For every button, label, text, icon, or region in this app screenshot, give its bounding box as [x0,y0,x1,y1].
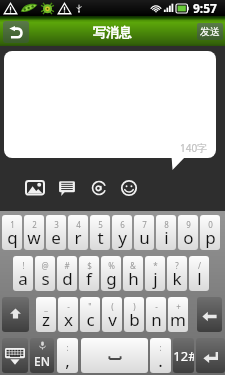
staticText: 4 [76,219,81,230]
staticText: @ [41,260,49,271]
staticText: r [74,226,82,249]
staticText: EN [34,353,50,369]
staticText: : [66,342,69,353]
button[interactable]: _ [36,297,56,332]
button[interactable]: 0 [200,215,220,250]
staticText: q [7,226,18,249]
button[interactable]: $ [79,256,99,291]
staticText: 1 [10,219,15,230]
button[interactable]: : [150,338,171,373]
button[interactable]: 3 [46,215,66,250]
button[interactable]: @ [35,256,55,291]
staticText: * [153,260,158,271]
button[interactable]: 9 [178,215,198,250]
button[interactable]: 7 [134,215,154,250]
button[interactable]: 4 [68,215,88,250]
staticText: _ [44,301,48,312]
button[interactable]: - [58,297,78,332]
staticText: b [129,308,140,331]
staticText: a [18,267,28,290]
staticText: 8 [164,219,169,230]
button[interactable]: Emoji [120,179,138,197]
staticText: 0 [208,219,213,230]
staticText: 6 [120,219,125,230]
staticText: e [51,226,61,249]
button[interactable]: 发送 [197,23,223,40]
staticText: 3 [54,219,59,230]
button[interactable]: 8 [156,215,176,250]
button[interactable]: - [146,297,166,332]
staticText: m [170,308,186,331]
button[interactable]: ) [124,297,144,332]
staticText: ! [22,260,25,271]
staticText: 140字 [180,141,208,155]
button[interactable] [81,338,148,373]
button[interactable]: / [189,256,209,291]
staticText: " [88,301,92,312]
staticText: ( [111,301,114,312]
staticText: o [183,226,194,249]
button[interactable]: # [57,256,77,291]
staticText: z [42,308,50,331]
staticText: j [153,267,158,290]
button[interactable]: 6 [112,215,132,250]
staticText: . [158,349,163,372]
staticText: v [108,308,117,331]
staticText: t [97,226,104,249]
staticText: / [198,260,201,271]
staticText: 5 [98,219,103,230]
button[interactable] [2,297,29,332]
staticText: ) [133,301,136,312]
button[interactable]: Mention someone [90,179,108,197]
button[interactable]: + [168,297,188,332]
staticText: n [151,308,162,331]
staticText: % [108,260,115,271]
staticText: 2 [32,219,37,230]
staticText: - [67,301,70,312]
button[interactable]: 12# [173,338,194,373]
staticText: u [139,226,150,249]
button[interactable]: ? [167,256,187,291]
staticText: 发送 [200,25,220,38]
staticText: + [176,301,181,312]
staticText: c [86,308,95,331]
staticText: 12# [173,347,194,365]
button[interactable]: 1 [2,215,22,250]
staticText: - [155,301,158,312]
button[interactable]: " [80,297,100,332]
staticText: h [128,267,139,290]
staticText: d [62,267,73,290]
button[interactable]: Back [3,21,29,43]
staticText: i [164,226,169,249]
button[interactable]: 5 [90,215,110,250]
button[interactable]: Topic [58,179,76,197]
button[interactable]: ! [13,256,33,291]
staticText: l [197,267,202,290]
button[interactable]: ( [102,297,122,332]
button[interactable] [196,338,225,373]
staticText: 9:57 [193,0,217,16]
staticText: s [41,267,50,290]
button[interactable]: EN [30,338,54,373]
staticText: f [86,267,92,290]
staticText: w [27,226,41,249]
button[interactable] [2,338,28,373]
button[interactable]: 2 [24,215,44,250]
button[interactable]: Add image [25,179,45,197]
staticText: ? [175,260,179,271]
staticText: 7 [142,219,147,230]
button[interactable]: * [145,256,165,291]
staticText: g [106,267,117,290]
staticText: : [159,342,162,353]
button[interactable] [197,297,222,332]
staticText: k [172,267,182,290]
staticText: , [65,349,70,372]
button[interactable]: & [123,256,143,291]
button[interactable]: 140字 [4,51,216,158]
button[interactable]: % [101,256,121,291]
staticText: $ [87,260,92,271]
staticText: 写消息 [93,24,132,40]
staticText: y [118,226,127,249]
button[interactable]: : [57,338,78,373]
staticText: x [64,308,73,331]
